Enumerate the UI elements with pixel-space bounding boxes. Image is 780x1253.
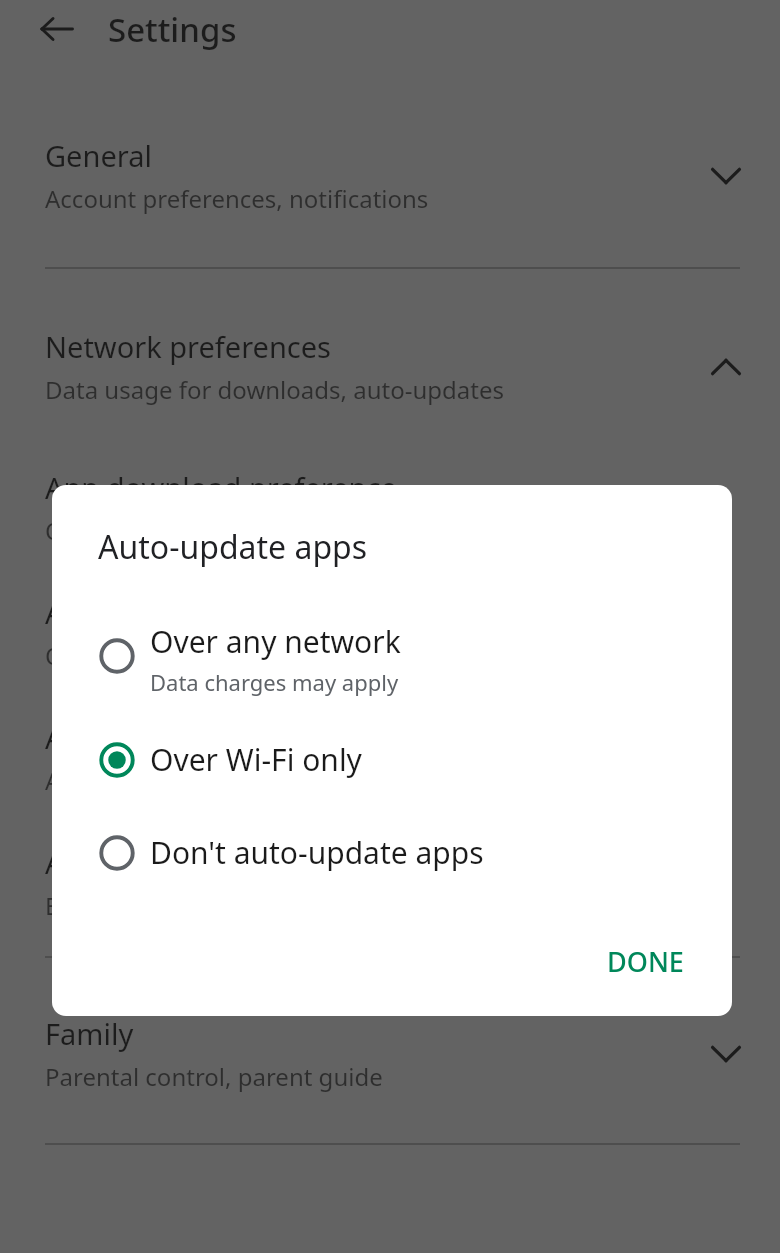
staticText: DONE (607, 943, 684, 980)
button[interactable]: Network preferences (0, 327, 780, 406)
staticText: Parental control, parent guide (45, 1060, 383, 1093)
staticText: Network preferences (45, 327, 331, 366)
button[interactable]: Family (0, 1014, 780, 1093)
button[interactable]: Don't auto-update apps (52, 832, 732, 873)
staticText: Auto-install Wear OS apps (45, 843, 398, 882)
staticText: Family (45, 1014, 134, 1053)
staticText: App download preference (45, 468, 397, 507)
staticText: Over any network (45, 514, 246, 547)
button[interactable]: DONE (583, 929, 708, 994)
staticText: Account preferences, notifications (45, 182, 429, 215)
staticText: Don't auto-update apps (150, 832, 484, 873)
staticText: Settings (108, 7, 237, 52)
staticText: Any network (45, 764, 187, 797)
staticText: Enabled (45, 889, 136, 922)
staticText: Auto-update apps (98, 525, 368, 569)
button[interactable]: Over any network (52, 621, 732, 697)
button[interactable]: Back (34, 6, 80, 52)
staticText: Auto-update apps (45, 593, 289, 632)
staticText: Auto-play videos (45, 718, 271, 757)
button[interactable]: Over Wi-Fi only (52, 739, 732, 780)
staticText: Data charges may apply (150, 667, 399, 697)
staticText: Over any network (150, 621, 401, 662)
button[interactable]: General (0, 136, 780, 215)
staticText: Over Wi-Fi only (150, 739, 362, 780)
staticText: Over Wi-Fi only (45, 639, 215, 672)
staticText: Data usage for downloads, auto-updates (45, 373, 504, 406)
staticText: General (45, 136, 152, 175)
